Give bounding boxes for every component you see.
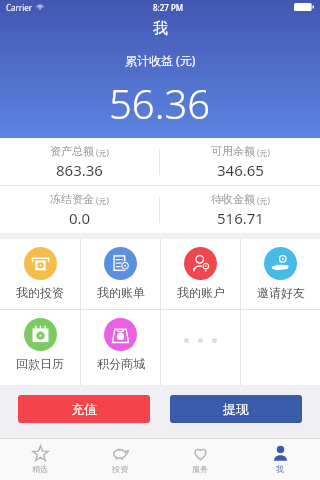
button[interactable]: 我的账户: [161, 239, 240, 309]
staticText: 积分商城: [97, 356, 145, 371]
staticText: (元): [255, 195, 270, 206]
staticText: 0.0: [69, 208, 91, 228]
staticText: (元): [94, 195, 109, 206]
staticText: 待收金额: [211, 192, 255, 206]
button[interactable]: 邀请好友: [241, 239, 320, 309]
button[interactable]: 服务: [160, 439, 240, 480]
button[interactable]: 提现: [170, 395, 302, 423]
button[interactable]: 我的投资: [0, 239, 80, 309]
staticText: 充值: [71, 401, 97, 417]
staticText: 516.71: [217, 208, 264, 228]
button[interactable]: 积分商城: [81, 310, 160, 385]
staticText: 可用余额: [211, 144, 255, 158]
staticText: 精选: [32, 464, 48, 474]
staticText: (元): [255, 147, 270, 158]
staticText: 346.65: [217, 160, 264, 180]
staticText: 服务: [192, 464, 208, 474]
staticText: 我的账单: [97, 285, 145, 300]
button[interactable]: 我的账单: [81, 239, 160, 309]
button[interactable]: 我: [240, 439, 320, 480]
staticText: 邀请好友: [257, 285, 305, 300]
staticText: 我: [276, 464, 284, 474]
staticText: 提现: [223, 401, 249, 417]
staticText: 回款日历: [16, 356, 64, 371]
staticText: 8:27 PM: [153, 2, 184, 13]
button[interactable]: 投资: [80, 439, 160, 480]
staticText: Carrier: [6, 2, 33, 13]
staticText: 冻结资金: [50, 192, 94, 206]
staticText: 863.36: [56, 160, 103, 180]
button[interactable]: 回款日历: [0, 310, 80, 385]
staticText: 56.36: [109, 76, 211, 130]
staticText: 累计收益 (元): [125, 52, 196, 68]
staticText: 投资: [112, 464, 128, 474]
staticText: 我的账户: [177, 285, 225, 300]
staticText: 资产总额: [50, 144, 94, 158]
staticText: 我的投资: [16, 285, 64, 300]
button[interactable]: 精选: [0, 439, 80, 480]
staticText: 我: [153, 19, 168, 38]
button[interactable]: 充值: [18, 395, 150, 423]
staticText: (元): [94, 147, 109, 158]
